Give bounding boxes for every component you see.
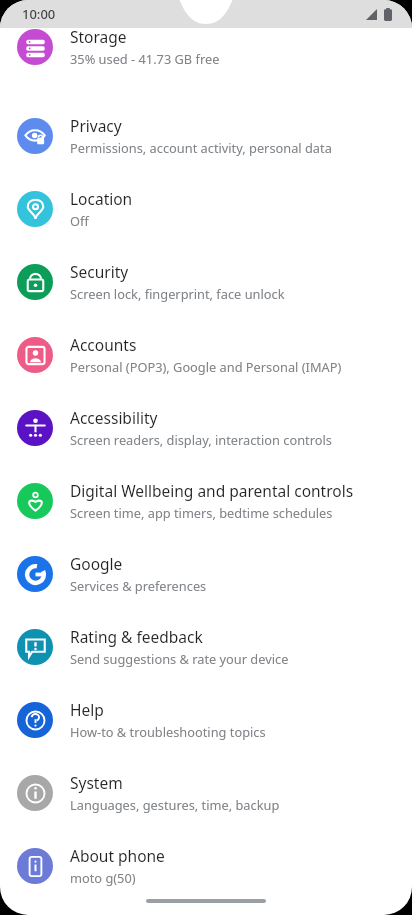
other: Security xyxy=(17,264,53,300)
staticText: Digital Wellbeing and parental controls xyxy=(70,480,354,501)
staticText: Off xyxy=(70,212,89,229)
other: Help xyxy=(17,702,53,738)
other: Privacy xyxy=(17,118,53,154)
other: Accessibility xyxy=(17,410,53,446)
staticText: Send suggestions & rate your device xyxy=(70,650,289,667)
staticText: How-to & troubleshooting topics xyxy=(70,723,266,740)
button[interactable]: Accounts xyxy=(0,318,412,391)
staticText: 35% used - 41.73 GB free xyxy=(70,50,220,67)
button[interactable]: Rating & feedback xyxy=(0,610,412,683)
button[interactable]: Storage xyxy=(0,29,412,99)
staticText: Permissions, account activity, personal … xyxy=(70,139,332,156)
button[interactable]: Digital Wellbeing and parental controls xyxy=(0,464,412,537)
staticText: Location xyxy=(70,188,133,209)
button[interactable]: About phone xyxy=(0,829,412,902)
staticText: moto g(50) xyxy=(70,869,136,886)
other: Digital Wellbeing and parental controls xyxy=(17,483,53,519)
button[interactable]: Security xyxy=(0,245,412,318)
staticText: About phone xyxy=(70,845,165,866)
other: System xyxy=(17,775,53,811)
other: Rating & feedback xyxy=(17,629,53,665)
staticText: Rating & feedback xyxy=(70,626,203,647)
button[interactable]: Accessibility xyxy=(0,391,412,464)
staticText: Languages, gestures, time, backup xyxy=(70,796,280,813)
staticText: Personal (POP3), Google and Personal (IM… xyxy=(70,358,342,375)
staticText: Screen lock, fingerprint, face unlock xyxy=(70,285,285,302)
staticText: Screen time, app timers, bedtime schedul… xyxy=(70,504,333,521)
other: Storage xyxy=(17,29,53,65)
other: Accounts xyxy=(17,337,53,373)
staticText: Security xyxy=(70,261,129,282)
button[interactable]: Help xyxy=(0,683,412,756)
staticText: System xyxy=(70,772,123,793)
button[interactable]: Google xyxy=(0,537,412,610)
staticText: 10:00 xyxy=(22,5,56,23)
button[interactable]: Privacy xyxy=(0,99,412,172)
staticText: Privacy xyxy=(70,115,122,136)
other: Google xyxy=(17,556,53,592)
other: About phone xyxy=(17,848,53,884)
staticText: Help xyxy=(70,699,104,720)
staticText: Accessibility xyxy=(70,407,158,428)
staticText: Google xyxy=(70,553,123,574)
staticText: Storage xyxy=(70,26,127,47)
button[interactable]: System xyxy=(0,756,412,829)
staticText: Services & preferences xyxy=(70,577,207,594)
staticText: Screen readers, display, interaction con… xyxy=(70,431,332,448)
button[interactable]: Location xyxy=(0,172,412,245)
staticText: Accounts xyxy=(70,334,137,355)
other: Location xyxy=(17,191,53,227)
